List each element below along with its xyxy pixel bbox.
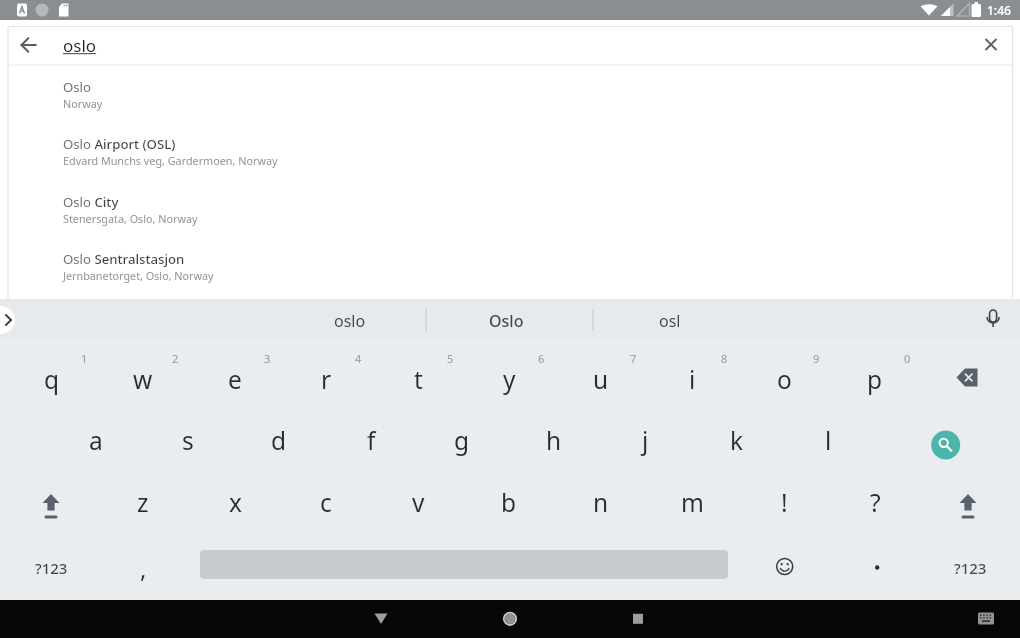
- button[interactable]: ,: [103, 540, 183, 596]
- button[interactable]: r: [282, 350, 370, 408]
- staticText: n: [593, 486, 609, 519]
- button[interactable]: q: [8, 350, 96, 408]
- button[interactable]: Oslo Sentralstasjon: [9, 238, 1012, 295]
- staticText: g: [454, 424, 470, 457]
- staticText: 2: [172, 351, 179, 366]
- staticText: osl: [659, 310, 681, 332]
- button[interactable]: Oslo: [9, 66, 1012, 123]
- button[interactable]: !: [740, 473, 828, 531]
- staticText: 1: [81, 351, 88, 366]
- button[interactable]: s: [144, 411, 232, 469]
- staticText: l: [825, 424, 832, 457]
- staticText: Oslo Airport (OSL): [63, 135, 176, 153]
- button[interactable]: [351, 600, 411, 638]
- staticText: i: [689, 363, 696, 396]
- staticText: t: [414, 363, 423, 396]
- button[interactable]: n: [557, 473, 645, 531]
- staticText: ?: [870, 486, 881, 519]
- button[interactable]: ?123: [7, 540, 95, 596]
- button[interactable]: u: [557, 350, 645, 408]
- button[interactable]: e: [191, 350, 279, 408]
- staticText: a: [89, 424, 103, 457]
- staticText: c: [320, 486, 332, 519]
- staticText: oslo: [63, 34, 97, 57]
- staticText: 8: [721, 351, 728, 366]
- button[interactable]: oslo: [63, 31, 223, 59]
- button[interactable]: [745, 538, 825, 595]
- button[interactable]: x: [191, 473, 279, 531]
- button[interactable]: f: [327, 411, 415, 469]
- staticText: o: [777, 363, 792, 396]
- button[interactable]: [917, 412, 975, 470]
- button[interactable]: [973, 299, 1013, 339]
- staticText: w: [133, 363, 153, 396]
- button[interactable]: j: [601, 411, 689, 469]
- button[interactable]: v: [374, 473, 462, 531]
- button[interactable]: osl: [600, 301, 740, 341]
- button[interactable]: [608, 600, 668, 638]
- staticText: 5: [447, 351, 454, 366]
- staticText: Jernbanetorget, Oslo, Norway: [63, 268, 214, 283]
- staticText: h: [546, 424, 562, 457]
- staticText: Oslo: [489, 310, 524, 332]
- button[interactable]: i: [648, 350, 736, 408]
- staticText: ?123: [35, 558, 68, 578]
- staticText: s: [182, 424, 194, 457]
- button[interactable]: g: [418, 411, 506, 469]
- staticText: Oslo City: [63, 193, 119, 211]
- button[interactable]: o: [740, 350, 828, 408]
- button[interactable]: Oslo Airport (OSL): [9, 123, 1012, 180]
- button[interactable]: ?: [831, 473, 919, 531]
- staticText: r: [321, 363, 332, 396]
- button[interactable]: h: [510, 411, 598, 469]
- button[interactable]: ?123: [926, 540, 1014, 596]
- button[interactable]: m: [648, 473, 736, 531]
- button[interactable]: l: [784, 411, 872, 469]
- button[interactable]: z: [99, 473, 187, 531]
- button[interactable]: p: [831, 350, 919, 408]
- staticText: j: [642, 424, 649, 457]
- staticText: z: [137, 486, 149, 519]
- button[interactable]: [837, 539, 917, 595]
- button[interactable]: [971, 25, 1012, 65]
- staticText: d: [271, 424, 287, 457]
- button[interactable]: k: [693, 411, 781, 469]
- button[interactable]: Oslo: [436, 301, 576, 341]
- button[interactable]: [966, 600, 1006, 638]
- button[interactable]: oslo: [280, 301, 420, 341]
- button[interactable]: [7, 479, 95, 537]
- button[interactable]: w: [99, 350, 187, 408]
- staticText: ,: [140, 552, 147, 585]
- button[interactable]: [0, 299, 22, 339]
- staticText: y: [503, 363, 516, 396]
- staticText: q: [44, 363, 60, 396]
- button[interactable]: b: [465, 473, 553, 531]
- staticText: Oslo: [63, 78, 91, 96]
- staticText: Stenersgata, Oslo, Norway: [63, 211, 198, 226]
- button[interactable]: t: [374, 350, 462, 408]
- staticText: x: [229, 486, 242, 519]
- button[interactable]: Oslo City: [9, 181, 1012, 238]
- staticText: 3: [264, 351, 271, 366]
- staticText: 4: [355, 351, 362, 366]
- staticText: 6: [538, 351, 545, 366]
- button[interactable]: d: [235, 411, 323, 469]
- staticText: !: [781, 486, 788, 519]
- button[interactable]: [924, 479, 1012, 537]
- button[interactable]: [923, 348, 1011, 406]
- staticText: f: [367, 424, 376, 457]
- button[interactable]: a: [52, 411, 140, 469]
- staticText: Oslo Sentralstasjon: [63, 250, 185, 268]
- staticText: m: [681, 486, 704, 519]
- button[interactable]: c: [282, 473, 370, 531]
- staticText: u: [593, 363, 609, 396]
- staticText: 1:46: [987, 2, 1011, 18]
- button[interactable]: [8, 25, 50, 65]
- staticText: 7: [630, 351, 637, 366]
- staticText: ?123: [954, 558, 987, 578]
- staticText: p: [867, 363, 883, 396]
- staticText: 0: [904, 351, 911, 366]
- button[interactable]: [480, 600, 540, 638]
- button[interactable]: y: [465, 350, 553, 408]
